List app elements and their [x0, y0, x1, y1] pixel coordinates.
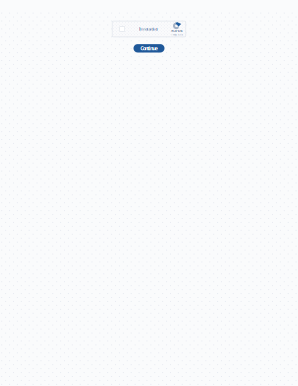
staticText: reCAPTCHA [171, 29, 183, 33]
button[interactable]: I'm not a robot [112, 21, 186, 37]
staticText: Privacy - Terms [171, 33, 183, 36]
staticText: Continue [140, 45, 158, 52]
staticText: I'm not a robot [139, 26, 158, 32]
button[interactable]: Continue [133, 44, 164, 52]
